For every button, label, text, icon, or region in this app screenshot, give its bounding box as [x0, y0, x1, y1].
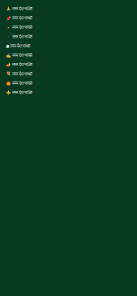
staticText: 🏵️ नमन देशभक्ति	[6, 80, 32, 86]
staticText: ▪️ नमन देशभक्ति	[6, 34, 32, 39]
staticText: 📌 नमन देशभक्ति	[6, 15, 32, 21]
staticText: ✍️ नमन देशभक्ति	[6, 53, 32, 58]
staticText: ◼ नमन देशभक्ति	[6, 43, 30, 48]
staticText: 🔸 नमन देशभक्ति	[6, 25, 32, 30]
staticText: 🙏 नमन देशभक्ति	[6, 6, 32, 11]
staticText: 🪔 नमन देशभक्ति	[6, 62, 32, 67]
staticText: ⚜️ नमन देशभक्ति	[6, 90, 32, 95]
staticText: 💐 नमन देशभक्ति	[6, 71, 32, 76]
